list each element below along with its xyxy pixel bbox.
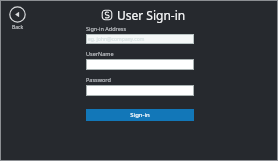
staticText: UserName xyxy=(86,50,114,57)
button[interactable]: Back xyxy=(7,5,28,32)
button[interactable] xyxy=(86,85,194,96)
button[interactable]: eg. john@company.com xyxy=(86,34,194,44)
staticText: Sign-in Address xyxy=(86,25,127,32)
button[interactable]: Sign-in xyxy=(86,109,194,121)
staticText: eg. john@company.com xyxy=(88,36,145,43)
button[interactable] xyxy=(86,59,194,70)
staticText: Password xyxy=(86,76,111,83)
staticText: Sign-in xyxy=(130,111,150,119)
staticText: Back xyxy=(12,24,24,31)
staticText: User Sign-in xyxy=(117,7,186,23)
